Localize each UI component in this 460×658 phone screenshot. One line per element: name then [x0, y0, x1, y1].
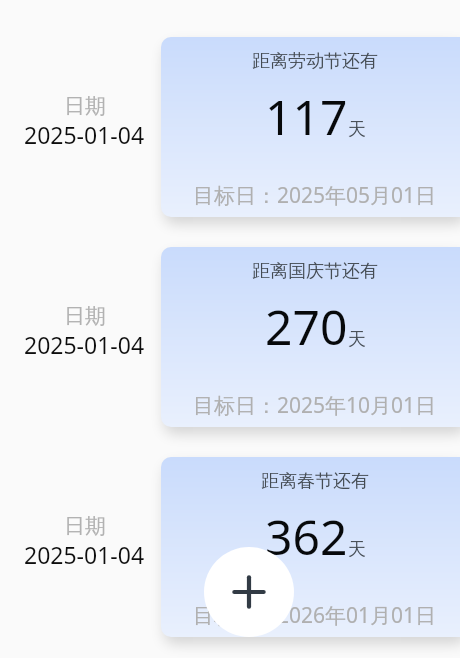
- staticText: 日期: [64, 513, 106, 539]
- staticText: 目标日：2025年05月01日: [193, 181, 437, 210]
- button[interactable]: 日期: [0, 37, 169, 217]
- staticText: 距离春节还有: [261, 470, 369, 493]
- staticText: 2025-01-04: [24, 539, 145, 570]
- staticText: 目标日：2025年10月01日: [193, 391, 437, 420]
- button[interactable]: 距离劳动节还有: [161, 37, 460, 217]
- staticText: 天: [348, 328, 366, 351]
- staticText: 270: [265, 294, 348, 359]
- button[interactable]: 日期: [0, 457, 169, 637]
- staticText: 日期: [64, 93, 106, 119]
- staticText: 天: [348, 538, 366, 561]
- button[interactable]: 距离春节还有: [161, 457, 460, 637]
- button[interactable]: 距离国庆节还有: [161, 247, 460, 427]
- staticText: 距离劳动节还有: [252, 50, 378, 73]
- staticText: 2025-01-04: [24, 329, 145, 360]
- staticText: 日期: [64, 303, 106, 329]
- staticText: 天: [348, 118, 366, 141]
- staticText: 距离国庆节还有: [252, 260, 378, 283]
- button[interactable]: Add countdown: [204, 547, 294, 637]
- staticText: 2025-01-04: [24, 119, 145, 150]
- button[interactable]: 日期: [0, 247, 169, 427]
- staticText: 362: [265, 504, 348, 569]
- staticText: 目标日：2026年01月01日: [193, 601, 437, 630]
- staticText: 117: [265, 84, 348, 149]
